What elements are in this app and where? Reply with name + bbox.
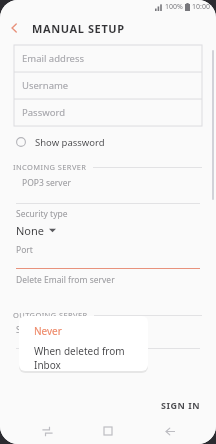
staticText: Security type (16, 208, 68, 220)
button[interactable]: Password (14, 99, 202, 126)
button[interactable]: Username (14, 72, 202, 99)
staticText: Delete Email from server (16, 274, 115, 286)
button[interactable]: Email address (14, 45, 202, 72)
staticText: Email address (22, 52, 85, 65)
staticText: None (16, 223, 45, 238)
staticText: Username (22, 79, 69, 92)
staticText: Port (16, 244, 33, 256)
staticText: Show password (35, 136, 105, 149)
button[interactable]: Back (155, 418, 185, 444)
button[interactable]: POP3 server (0, 177, 216, 204)
button[interactable]: SMTP server (0, 324, 216, 349)
staticText: MANUAL SETUP (32, 21, 125, 36)
button[interactable]: SIGN IN (145, 394, 216, 416)
staticText: 10:00 (192, 2, 210, 12)
button[interactable]: Never (19, 318, 148, 344)
button[interactable]: Back (0, 14, 28, 42)
staticText: OUTGOING SERVER (13, 310, 88, 320)
staticText: Never (34, 324, 62, 338)
staticText: Password (22, 106, 65, 119)
button[interactable]: Home (93, 418, 123, 444)
staticText: INCOMING SERVER (13, 162, 87, 172)
staticText: 100% (165, 2, 183, 12)
staticText: When deleted from Inbox (34, 344, 148, 370)
button[interactable]: When deleted from Inbox (19, 344, 148, 370)
button[interactable]: Port (0, 244, 216, 269)
staticText: SIGN IN (161, 399, 200, 411)
button[interactable]: Show password (0, 131, 216, 153)
staticText: POP3 server (22, 177, 71, 189)
button[interactable]: Recents (32, 418, 62, 444)
button[interactable]: Security type (0, 208, 216, 238)
staticText: SMTP server (16, 324, 66, 336)
